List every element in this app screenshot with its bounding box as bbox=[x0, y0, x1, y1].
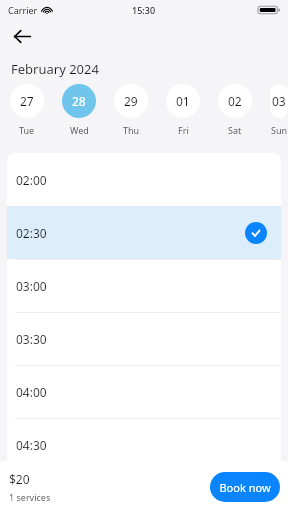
staticText: Tue bbox=[19, 124, 35, 136]
staticText: 28 bbox=[72, 93, 86, 109]
staticText: 04:00 bbox=[16, 384, 47, 400]
button[interactable]: 27 bbox=[10, 84, 44, 136]
staticText: Thu bbox=[123, 124, 140, 136]
staticText: Sun bbox=[271, 124, 288, 136]
staticText: 01 bbox=[176, 93, 190, 109]
staticText: 02:00 bbox=[16, 172, 47, 188]
staticText: 27 bbox=[20, 93, 34, 109]
staticText: Wed bbox=[70, 124, 89, 136]
staticText: 02:30 bbox=[16, 225, 47, 241]
staticText: Sat bbox=[228, 124, 242, 136]
staticText: Book now bbox=[219, 480, 271, 495]
staticText: 03 bbox=[272, 93, 286, 109]
staticText: 04:30 bbox=[16, 437, 47, 453]
button[interactable]: 28 bbox=[62, 84, 96, 136]
button[interactable]: 02:30 bbox=[7, 206, 281, 259]
staticText: 02 bbox=[228, 93, 242, 109]
button[interactable]: 04:30 bbox=[7, 418, 281, 471]
staticText: 03:30 bbox=[16, 331, 47, 347]
button[interactable]: 29 bbox=[114, 84, 148, 136]
staticText: 29 bbox=[124, 93, 138, 109]
staticText: $20 bbox=[9, 471, 30, 487]
button[interactable]: Back bbox=[9, 23, 36, 50]
button[interactable]: 03:30 bbox=[7, 312, 281, 365]
button[interactable]: 03:00 bbox=[7, 259, 281, 312]
staticText: Fri bbox=[178, 124, 189, 136]
staticText: 15:30 bbox=[132, 4, 156, 16]
button[interactable]: 02 bbox=[218, 84, 252, 136]
staticText: 03:00 bbox=[16, 278, 47, 294]
button[interactable]: 03 bbox=[270, 84, 288, 136]
button[interactable]: 02:00 bbox=[7, 153, 281, 206]
button[interactable]: Book now bbox=[210, 472, 280, 502]
staticText: 1 services bbox=[9, 491, 51, 503]
button[interactable]: 01 bbox=[166, 84, 200, 136]
staticText: February 2024 bbox=[11, 60, 99, 78]
staticText: Carrier bbox=[8, 4, 38, 16]
button[interactable]: 04:00 bbox=[7, 365, 281, 418]
